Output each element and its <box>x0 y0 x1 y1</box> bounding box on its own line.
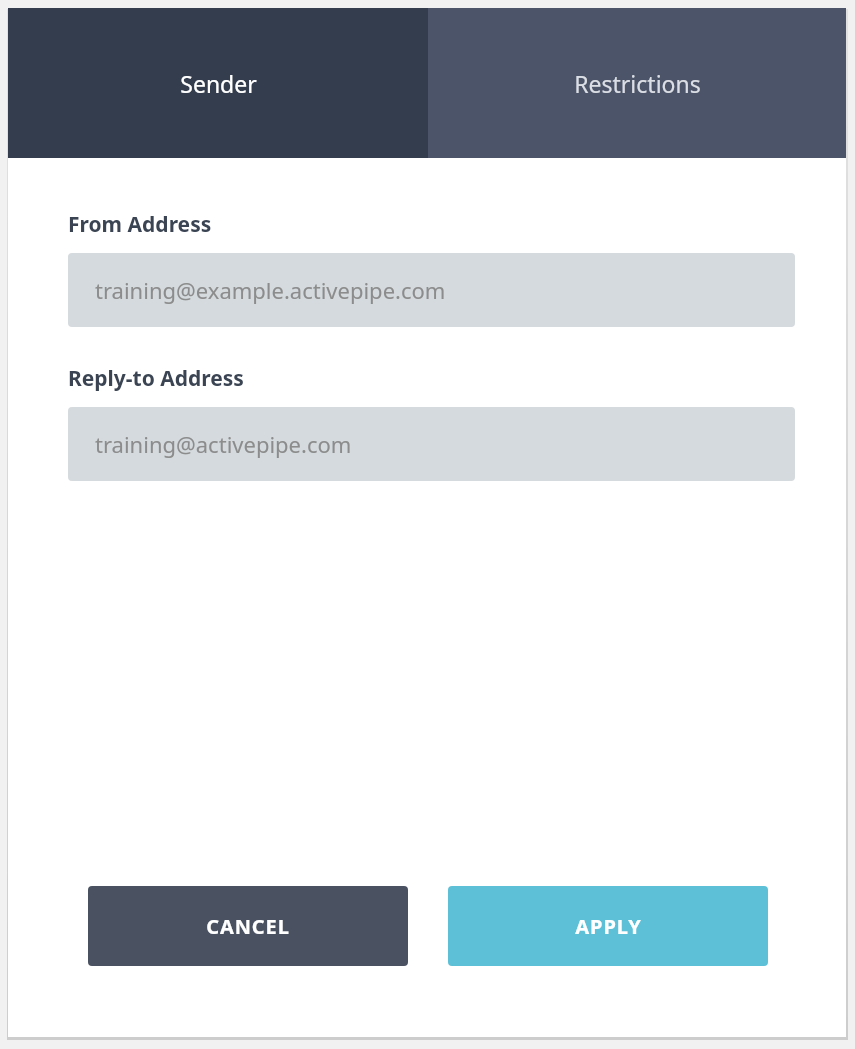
button[interactable]: CANCEL <box>88 886 408 966</box>
button[interactable]: training@example.activepipe.com <box>68 253 795 327</box>
staticText: Sender <box>180 68 257 99</box>
staticText: Reply-to Address <box>68 364 244 393</box>
staticText: training@example.activepipe.com <box>95 275 446 305</box>
button[interactable]: training@activepipe.com <box>68 407 795 481</box>
button[interactable]: Sender <box>8 8 428 158</box>
staticText: training@activepipe.com <box>95 429 352 459</box>
staticText: Restrictions <box>574 68 701 99</box>
staticText: From Address <box>68 210 212 239</box>
button[interactable]: Restrictions <box>428 8 846 158</box>
button[interactable]: APPLY <box>448 886 768 966</box>
staticText: CANCEL <box>206 913 290 940</box>
staticText: APPLY <box>575 913 642 940</box>
